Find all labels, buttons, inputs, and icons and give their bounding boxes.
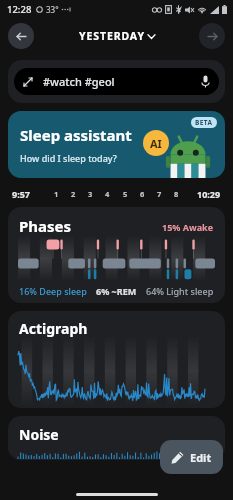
staticText: Edit (190, 450, 212, 465)
button[interactable]: Next day (199, 23, 225, 49)
staticText: 9:57 (12, 188, 30, 200)
staticText: Noise (19, 425, 59, 444)
staticText: 7 (157, 189, 162, 199)
staticText: 64% Light sleep (146, 285, 214, 297)
button[interactable]: Back (8, 23, 34, 49)
staticText: Sleep assistant (20, 125, 132, 145)
staticText: 16% Deep sleep (19, 285, 87, 297)
staticText: BETA (195, 118, 213, 127)
staticText: 12:28 (7, 3, 32, 16)
staticText: 5 (123, 189, 128, 199)
staticText: AI (150, 136, 162, 151)
button[interactable]: Noise (8, 416, 225, 460)
staticText: 2 (71, 189, 76, 199)
staticText: #watch #geol (43, 74, 115, 89)
staticText: Phases (19, 216, 72, 236)
staticText: 1 (54, 189, 59, 199)
staticText: 10:29 (197, 188, 221, 200)
staticText: 3 (88, 189, 93, 199)
staticText: Actigraph (19, 319, 88, 338)
button[interactable]: Expand (14, 68, 219, 95)
button[interactable]: Edit (160, 440, 223, 474)
button[interactable]: Actigraph (8, 311, 225, 408)
other: Voice search (201, 75, 210, 88)
staticText: 8 (174, 189, 179, 199)
staticText: 15% Awake (162, 221, 214, 233)
button[interactable]: Sleep assistant (8, 111, 225, 178)
button[interactable]: YESTERDAY (79, 29, 155, 43)
button[interactable]: Phases (8, 207, 225, 303)
staticText: 6 (140, 189, 145, 199)
staticText: 33° (46, 4, 59, 15)
staticText: 6% ~REM (96, 285, 137, 297)
staticText: How did I sleep today? (20, 152, 117, 164)
other: Expand (23, 77, 33, 87)
staticText: 4 (105, 189, 110, 199)
staticText: YESTERDAY (79, 29, 145, 43)
